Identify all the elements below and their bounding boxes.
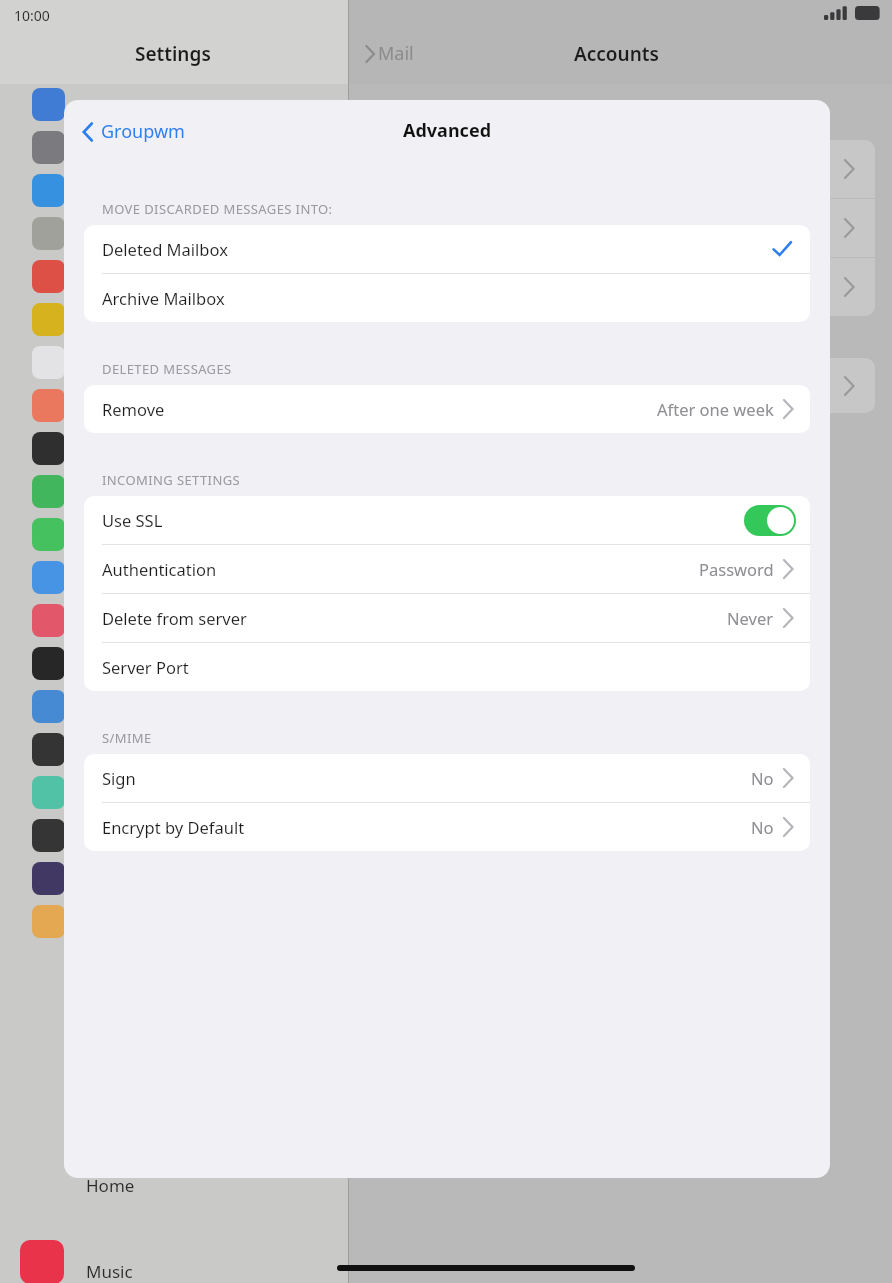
staticText: Groupwm [101, 119, 185, 144]
staticText: Never [727, 607, 774, 629]
staticText: Music [86, 1260, 133, 1283]
button[interactable]: Archive Mailbox [84, 274, 810, 322]
staticText: Delete from server [102, 607, 247, 629]
staticText: Remove [102, 398, 165, 420]
staticText: 10:00 [14, 6, 50, 25]
staticText: Authentication [102, 558, 217, 580]
button[interactable]: Encrypt by Default [84, 803, 810, 851]
staticText: Deleted Mailbox [102, 238, 228, 260]
button[interactable]: Use SSL [84, 496, 810, 544]
button[interactable]: Use SSL toggle [744, 505, 796, 536]
staticText: DELETED MESSAGES [102, 360, 232, 378]
button[interactable]: Delete from server [84, 594, 810, 642]
button[interactable]: Remove [84, 385, 810, 433]
staticText: Advanced [403, 118, 492, 143]
button[interactable]: Authentication [84, 545, 810, 593]
button[interactable]: Server Port [84, 643, 810, 691]
staticText: No [751, 816, 774, 838]
staticText: Sign [102, 767, 136, 789]
staticText: Home [86, 1174, 135, 1197]
button[interactable]: Sign [84, 754, 810, 802]
staticText: Archive Mailbox [102, 287, 225, 309]
staticText: INCOMING SETTINGS [102, 471, 241, 489]
button[interactable]: Mail [362, 41, 414, 66]
staticText: Server Port [102, 656, 189, 678]
button[interactable]: Groupwm [76, 113, 189, 150]
staticText: Use SSL [102, 509, 163, 531]
staticText: Encrypt by Default [102, 816, 245, 838]
staticText: Password [699, 558, 774, 580]
staticText: No [751, 767, 774, 789]
button[interactable]: Deleted Mailbox [84, 225, 810, 273]
staticText: MOVE DISCARDED MESSAGES INTO: [102, 200, 333, 218]
staticText: Accounts [574, 41, 659, 67]
staticText: After one week [657, 398, 774, 420]
staticText: Mail [378, 41, 414, 66]
staticText: S/MIME [102, 729, 152, 747]
staticText: Settings [135, 41, 211, 67]
